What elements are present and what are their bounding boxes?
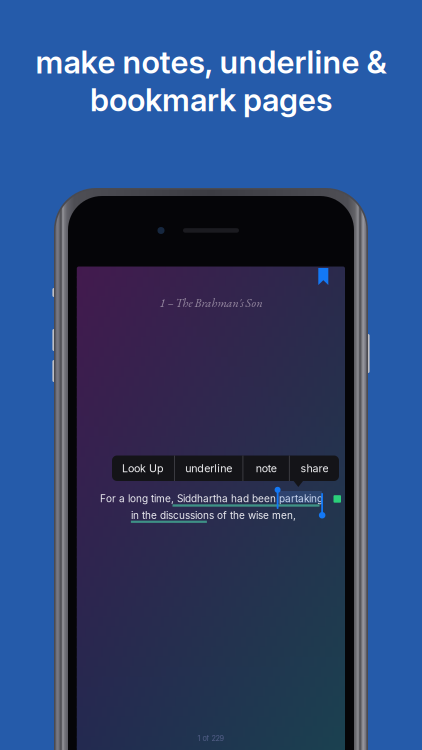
staticText: in the discussions of the wise men, — [131, 509, 296, 521]
staticText: share — [300, 462, 328, 475]
staticText: Look Up — [122, 462, 164, 475]
staticText: bookmark pages — [90, 81, 332, 119]
staticText: underline — [185, 462, 232, 475]
staticText: note — [256, 462, 277, 475]
button[interactable]: Look Up — [112, 455, 174, 481]
staticText: make notes, underline & — [35, 43, 386, 81]
staticText: 1 – The Brahman's Son — [159, 295, 262, 311]
staticText: For a long time, Siddhartha had been par… — [100, 492, 323, 505]
button[interactable]: note — [243, 455, 289, 481]
button[interactable]: underline — [175, 455, 242, 481]
staticText: 1 of 229 — [197, 734, 224, 743]
button[interactable]: share — [290, 455, 339, 481]
